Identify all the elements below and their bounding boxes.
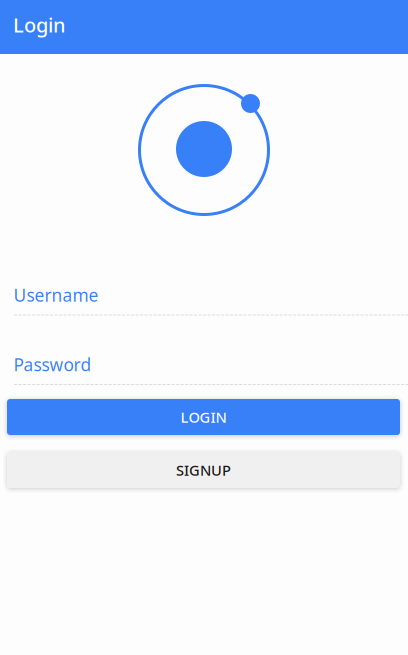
staticText: Username [13, 283, 98, 306]
staticText: Login [13, 11, 66, 38]
button[interactable]: Username [0, 284, 408, 315]
button[interactable]: SIGNUP [7, 452, 400, 488]
staticText: Password [13, 353, 91, 376]
staticText: SIGNUP [176, 460, 231, 480]
button[interactable]: LOGIN [7, 399, 400, 435]
staticText: LOGIN [180, 407, 226, 427]
button[interactable]: Password [0, 353, 408, 385]
